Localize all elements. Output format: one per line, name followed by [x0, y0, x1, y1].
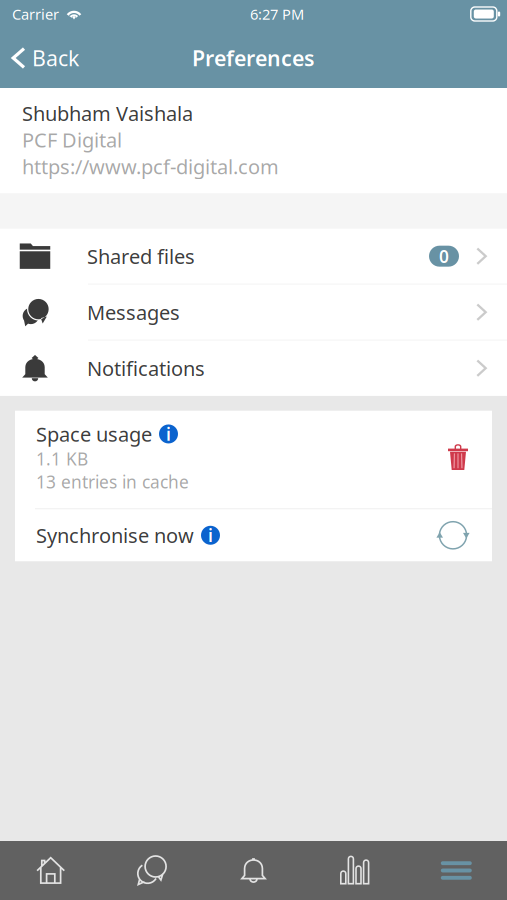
- staticText: Shared files: [87, 243, 195, 269]
- button[interactable]: Notifications: [0, 341, 507, 396]
- button[interactable]: Statistics: [304, 855, 406, 885]
- button[interactable]: Home: [0, 856, 101, 884]
- staticText: https://www.pcf-digital.com: [22, 153, 279, 180]
- button[interactable]: Delete cache: [446, 426, 470, 488]
- staticText: i: [166, 422, 171, 445]
- staticText: 6:27 PM: [250, 4, 304, 24]
- button[interactable]: Shared files: [0, 229, 507, 284]
- button[interactable]: Menu: [406, 860, 507, 880]
- staticText: Carrier: [12, 4, 59, 24]
- staticText: 0: [439, 245, 449, 268]
- staticText: Space usage: [36, 421, 152, 447]
- staticText: Back: [32, 44, 79, 72]
- button[interactable]: Synchronise now: [15, 509, 492, 561]
- button[interactable]: Back: [0, 28, 91, 88]
- staticText: Shubham Vaishala: [22, 100, 193, 127]
- staticText: 13 entries in cache: [36, 470, 189, 493]
- staticText: i: [208, 524, 213, 547]
- button[interactable]: Notifications: [203, 856, 304, 885]
- staticText: Preferences: [192, 44, 315, 72]
- staticText: Synchronise now: [36, 522, 194, 549]
- staticText: PCF Digital: [22, 127, 122, 153]
- staticText: 1.1 KB: [36, 447, 88, 470]
- staticText: Messages: [87, 299, 180, 325]
- button[interactable]: Messages: [0, 285, 507, 340]
- staticText: Notifications: [87, 355, 205, 381]
- button[interactable]: Messages: [101, 855, 203, 885]
